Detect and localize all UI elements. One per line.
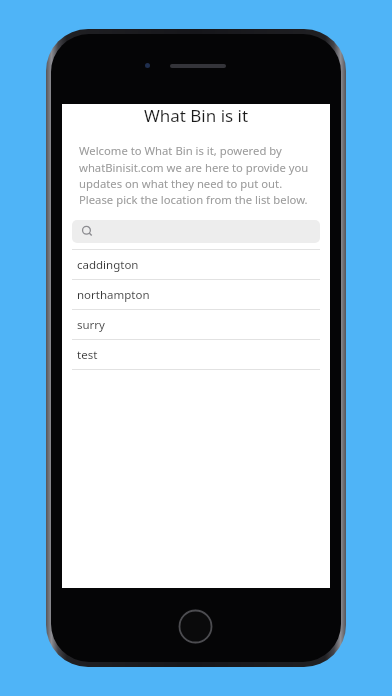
button[interactable]: Home <box>178 609 213 644</box>
button[interactable]: caddington <box>72 250 320 280</box>
button[interactable]: Search <box>72 220 320 243</box>
button[interactable]: surry <box>72 310 320 340</box>
staticText: test <box>77 347 98 363</box>
staticText: caddington <box>77 257 139 273</box>
staticText: What Bin is it <box>62 104 330 127</box>
staticText: Welcome to What Bin is it, powered by wh… <box>79 143 313 207</box>
button[interactable]: test <box>72 340 320 370</box>
button[interactable]: northampton <box>72 280 320 310</box>
staticText: northampton <box>77 287 150 303</box>
staticText: surry <box>77 317 105 333</box>
